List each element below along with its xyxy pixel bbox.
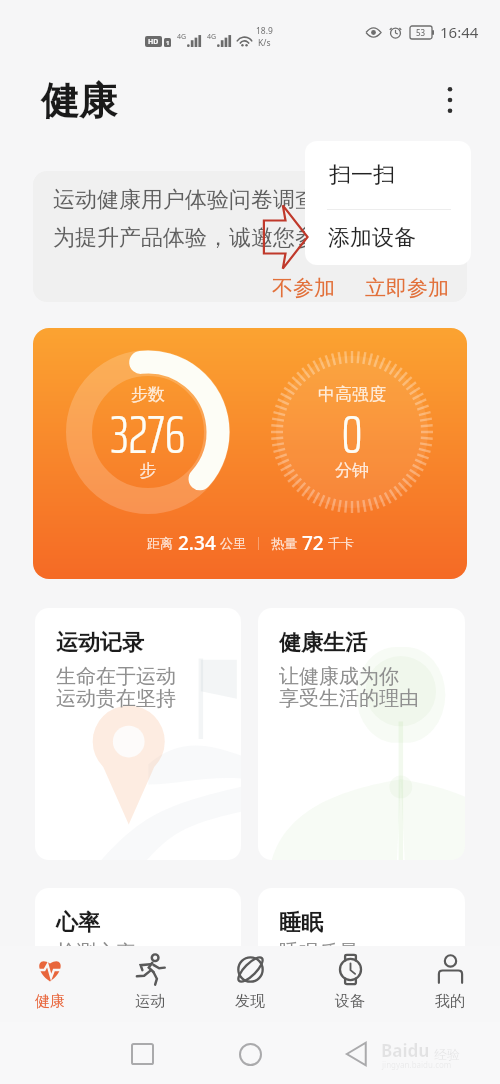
staticText: 16:44 — [440, 22, 479, 42]
staticText: 让健康成为你 享受生活的理由 — [279, 664, 419, 711]
button[interactable]: 运动记录 — [35, 608, 241, 860]
staticText: 检测心率 — [56, 940, 136, 965]
button[interactable]: 立即参加 — [362, 272, 452, 302]
button[interactable]: 我的 — [400, 946, 500, 1022]
staticText: jingyan.baidu.com — [382, 1059, 452, 1070]
staticText: 心率 — [56, 909, 100, 937]
staticText: 千卡 — [328, 535, 354, 551]
staticText: K/s — [258, 37, 271, 49]
staticText: 健康 — [35, 992, 65, 1011]
staticText: 2.34 — [178, 530, 216, 556]
button[interactable]: 健康生活 — [258, 608, 465, 860]
button[interactable]: 步数 — [33, 328, 467, 579]
staticText: 为提升产品体验，诚邀您参加问卷调查 — [53, 224, 427, 252]
staticText: 不参加 — [272, 275, 335, 301]
button[interactable]: 心率 — [35, 888, 241, 988]
staticText: 分钟 — [270, 460, 434, 481]
staticText: 1 — [166, 39, 170, 47]
button[interactable]: 设备 — [300, 946, 400, 1022]
staticText: 立即参加 — [365, 275, 449, 301]
staticText: 步数 — [66, 384, 230, 405]
button[interactable]: 扫一扫 — [305, 141, 471, 209]
button[interactable]: More options — [432, 79, 468, 121]
staticText: 健康生活 — [279, 629, 367, 657]
staticText: 步 — [66, 460, 230, 481]
button[interactable]: 健康 — [0, 946, 100, 1022]
staticText: 扫一扫 — [329, 161, 395, 189]
button[interactable]: Back — [333, 1031, 379, 1077]
staticText: HD — [148, 37, 159, 47]
staticText: 53 — [416, 27, 426, 38]
button[interactable]: Home — [227, 1031, 273, 1077]
staticText: 公里 — [220, 535, 246, 551]
staticText: 距离 — [147, 535, 173, 551]
staticText: 睡眠质量 — [279, 940, 359, 965]
button[interactable]: 发现 — [200, 946, 300, 1022]
staticText: Baidu — [381, 1039, 430, 1062]
button[interactable]: 添加设备 — [305, 210, 471, 265]
staticText: 4G — [207, 32, 217, 42]
staticText: 热量 — [271, 535, 297, 551]
button[interactable]: 运动 — [100, 946, 200, 1022]
staticText: 添加设备 — [328, 224, 416, 252]
staticText: 经验 — [434, 1046, 460, 1062]
staticText: 72 — [302, 530, 324, 556]
staticText: 健康 — [41, 77, 117, 125]
staticText: 设备 — [335, 992, 365, 1011]
staticText: 运动 — [135, 992, 165, 1011]
staticText: 生命在于运动 运动贵在坚持 — [56, 664, 176, 711]
staticText: 中高强度 — [270, 384, 434, 405]
button[interactable]: 睡眠 — [258, 888, 465, 988]
staticText: 3276 — [66, 393, 230, 476]
button[interactable]: Recents — [119, 1031, 165, 1077]
staticText: 0 — [270, 393, 434, 476]
button[interactable]: 不参加 — [269, 272, 338, 302]
staticText: 我的 — [435, 992, 465, 1011]
staticText: 4G — [177, 32, 187, 42]
staticText: 发现 — [235, 992, 265, 1011]
staticText: 运动健康用户体验问卷调查 — [53, 186, 317, 214]
staticText: 18.9 — [256, 25, 273, 37]
staticText: 睡眠 — [279, 909, 323, 937]
button[interactable]: 运动健康用户体验问卷调查 — [33, 171, 467, 302]
staticText: 运动记录 — [56, 629, 144, 657]
